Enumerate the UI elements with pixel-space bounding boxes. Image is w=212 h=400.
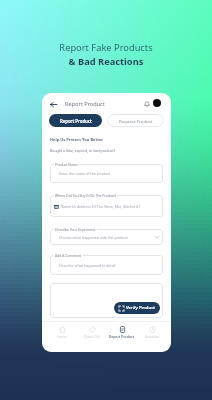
button[interactable]: Choose what happened with the product (50, 229, 163, 245)
button[interactable]: Describe what happened in detail (50, 255, 163, 275)
staticText: Report Product (60, 118, 92, 124)
staticText: Add A Comment (55, 253, 82, 258)
button[interactable]: Notifications (141, 98, 152, 109)
staticText: Product Name (55, 162, 78, 167)
staticText: Describe what happened in detail (59, 263, 116, 268)
button[interactable]: Profile (153, 99, 161, 107)
staticText: Report Product (109, 334, 135, 339)
staticText: Enter the name of the product (59, 171, 111, 176)
staticText: Name Or Address Of The Store, Mkt, Marke… (61, 204, 141, 209)
button[interactable]: Report Product (49, 114, 102, 127)
staticText: Help Us Protect You Better (50, 137, 104, 142)
staticText: Report Product (65, 100, 105, 108)
staticText: Report Fake Products (0, 41, 212, 54)
staticText: Bought a fake, expired, or bad product? (50, 148, 116, 153)
staticText: Request Product (119, 118, 153, 124)
button[interactable]: Activities (137, 325, 167, 339)
staticText: Describe Your Experience (55, 227, 96, 232)
staticText: Verify Product (126, 305, 155, 311)
staticText: & Bad Reactions (0, 55, 212, 68)
button[interactable]: Report Product (107, 325, 137, 339)
button[interactable] (50, 283, 163, 318)
staticText: Quick Chk (84, 334, 100, 339)
button[interactable]: Quick Chk (77, 325, 107, 339)
staticText: Choose what happened with the product (59, 235, 128, 240)
button[interactable]: Verify Product (114, 302, 160, 314)
button[interactable]: Back (47, 98, 59, 110)
button[interactable]: Request Product (107, 114, 164, 127)
button[interactable]: Enter the name of the product (50, 164, 163, 183)
button[interactable]: Name Or Address Of The Store, Mkt, Marke… (50, 195, 163, 217)
staticText: Home (57, 334, 67, 339)
button[interactable]: Home (46, 325, 77, 339)
staticText: Where Did You Buy It (Or The Product) (55, 193, 116, 198)
staticText: Activities (145, 334, 160, 339)
